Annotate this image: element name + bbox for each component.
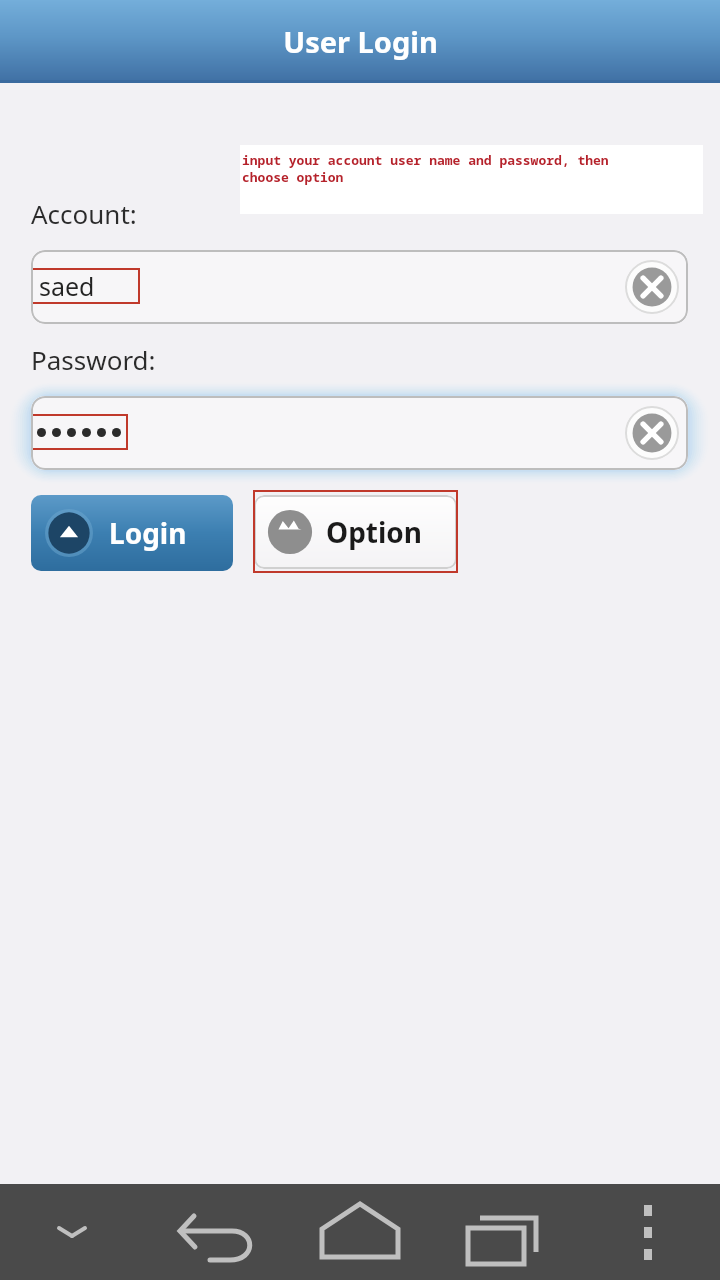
button[interactable]: Recent apps <box>432 1184 576 1280</box>
button[interactable]: Option <box>253 490 458 573</box>
button[interactable]: Clear text <box>31 396 688 470</box>
button[interactable]: Clear text <box>625 260 679 314</box>
staticText: input your account user name and passwor… <box>242 151 609 186</box>
staticText: User Login <box>283 22 438 61</box>
staticText: Password: <box>31 342 156 377</box>
button[interactable]: Clear text <box>625 406 679 460</box>
button[interactable]: saed <box>31 250 688 324</box>
button[interactable]: Login <box>31 495 233 571</box>
button[interactable]: Hide keyboard <box>0 1184 144 1280</box>
staticText: saed <box>39 269 95 303</box>
staticText: Account: <box>31 196 137 231</box>
staticText: Login <box>109 514 187 552</box>
button[interactable]: More options <box>576 1184 720 1280</box>
button[interactable]: Back <box>144 1184 288 1280</box>
button[interactable]: Home <box>288 1184 432 1280</box>
staticText: Option <box>326 513 423 551</box>
